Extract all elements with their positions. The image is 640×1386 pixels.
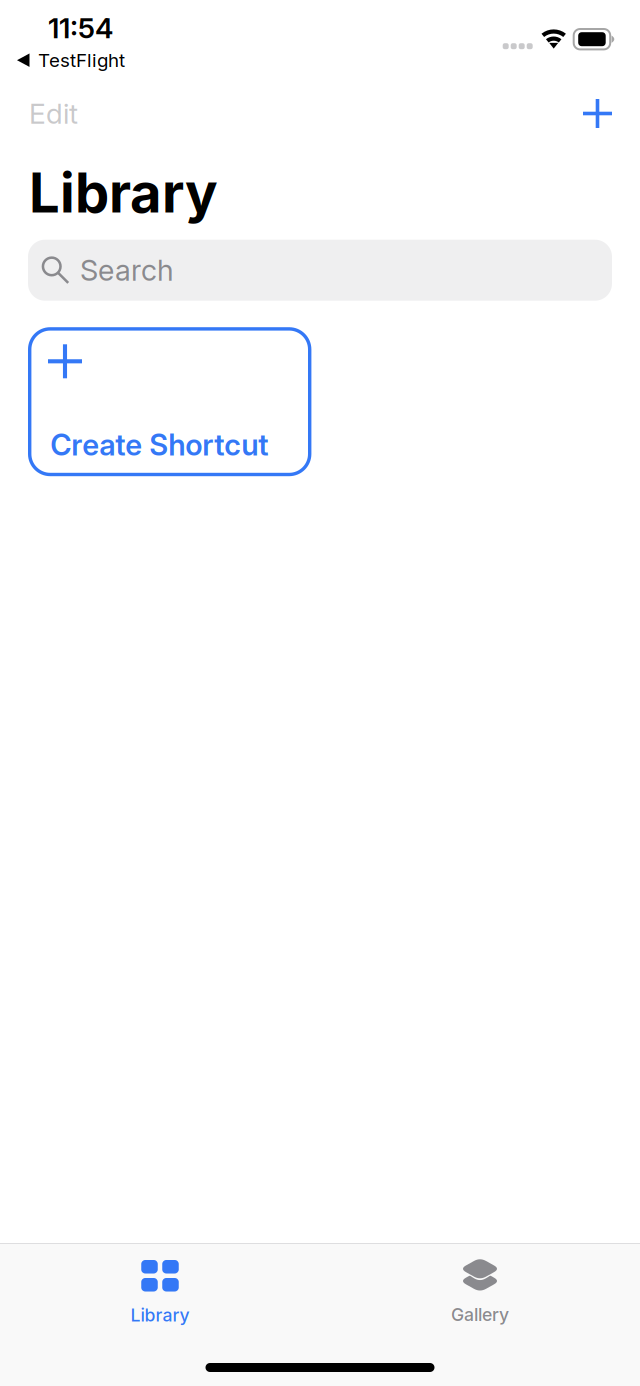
staticText: Create Shortcut (50, 427, 268, 462)
staticText: TestFlight (38, 49, 125, 71)
staticText: Library (130, 1304, 189, 1326)
button[interactable]: Gallery (320, 1244, 640, 1327)
button[interactable]: Create Shortcut (573, 89, 622, 138)
button[interactable]: TestFlight (0, 45, 125, 71)
staticText: Gallery (451, 1304, 509, 1325)
button[interactable]: Edit (29, 88, 90, 139)
button[interactable]: Create Shortcut (30, 329, 310, 474)
staticText: Edit (29, 97, 78, 130)
button[interactable]: Library (0, 1244, 320, 1327)
staticText: Search (80, 253, 174, 288)
staticText: 11:54 (48, 11, 113, 45)
staticText: Library (29, 160, 218, 226)
